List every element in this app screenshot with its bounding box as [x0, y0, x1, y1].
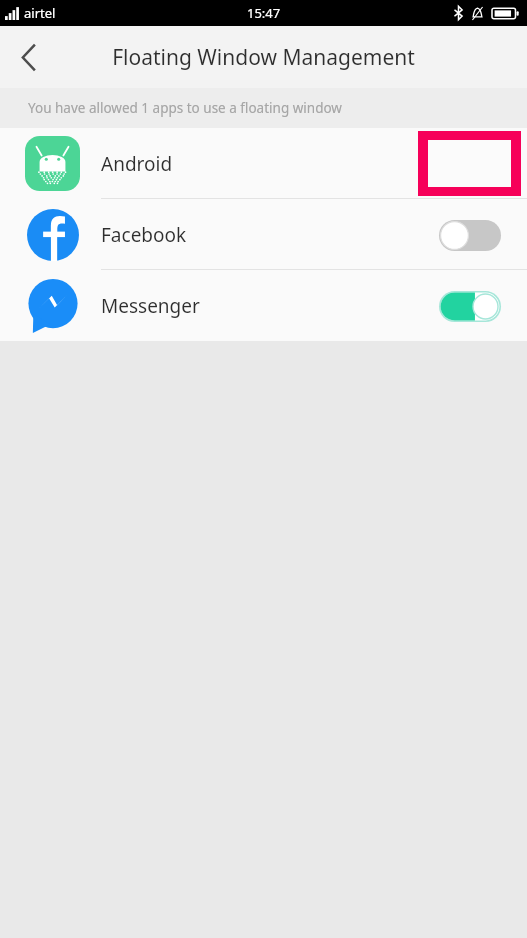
- button[interactable]: Android: [0, 128, 527, 199]
- button[interactable]: Toggle floating window for Facebook: [438, 218, 502, 252]
- staticText: Android: [101, 151, 173, 177]
- staticText: airtel: [24, 4, 56, 22]
- staticText: 15:47: [247, 4, 281, 22]
- button[interactable]: Toggle floating window for Messenger: [438, 289, 502, 323]
- staticText: Floating Window Management: [112, 43, 415, 72]
- staticText: Facebook: [101, 222, 187, 248]
- button[interactable]: Messenger: [0, 270, 527, 341]
- button[interactable]: Facebook: [0, 199, 527, 270]
- staticText: Messenger: [101, 293, 200, 319]
- staticText: You have allowed 1 apps to use a floatin…: [28, 99, 342, 117]
- button[interactable]: Back: [0, 28, 58, 86]
